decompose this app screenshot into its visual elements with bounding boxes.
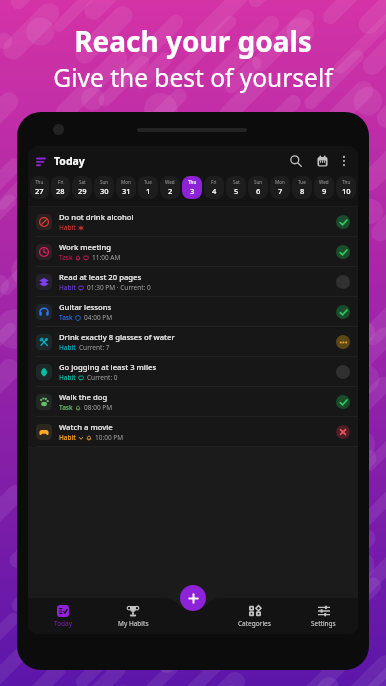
button[interactable]: Do not drink alcohol	[28, 207, 358, 237]
button[interactable]: Sun	[94, 176, 114, 199]
staticText: Wed	[319, 179, 329, 185]
button[interactable]: Toggle status	[336, 335, 350, 349]
staticText: Task	[59, 403, 73, 412]
staticText: Drink exactly 8 glasses of water	[59, 332, 175, 342]
staticText: Fri	[58, 179, 64, 185]
staticText: 28	[56, 186, 65, 196]
button[interactable]: Categories	[220, 598, 289, 634]
button[interactable]: More options	[334, 151, 354, 171]
button[interactable]: Today	[28, 598, 98, 634]
staticText: Settings	[311, 619, 336, 628]
staticText: 01:30 PM · Current: 0	[87, 283, 151, 292]
staticText: Reach your goals	[74, 22, 312, 60]
button[interactable]: Toggle status	[336, 245, 350, 259]
staticText: 31	[122, 186, 131, 196]
button[interactable]: Toggle status	[336, 275, 350, 289]
staticText: Work meeting	[59, 242, 112, 252]
button[interactable]: Toggle status	[336, 395, 350, 409]
staticText: Give the best of yourself	[53, 61, 333, 94]
staticText: Mon	[121, 179, 131, 185]
button[interactable]: Toggle status	[336, 215, 350, 229]
button[interactable]: My Habits	[98, 598, 168, 634]
button[interactable]: Tue	[138, 176, 158, 199]
staticText: Do not drink alcohol	[59, 212, 134, 222]
staticText: Sat	[233, 179, 240, 185]
button[interactable]: Fri	[51, 176, 70, 199]
button[interactable]: Toggle status	[336, 425, 350, 439]
button[interactable]: Watch a movie	[28, 417, 358, 447]
button[interactable]: Toggle status	[336, 305, 350, 319]
staticText: Sun	[254, 179, 263, 185]
staticText: 30	[100, 186, 109, 196]
button[interactable]: Go jogging at least 3 miles	[28, 357, 358, 387]
staticText: 8	[300, 186, 305, 196]
staticText: Wed	[165, 179, 175, 185]
staticText: Today	[54, 619, 73, 628]
staticText: Go jogging at least 3 miles	[59, 362, 157, 372]
staticText: 08:00 PM	[84, 403, 113, 412]
staticText: 1	[146, 186, 151, 196]
staticText: Thu	[188, 179, 197, 185]
button[interactable]: Sat	[72, 176, 92, 199]
staticText: Habit	[59, 223, 76, 232]
staticText: Habit	[59, 433, 76, 442]
staticText: 5	[234, 186, 239, 196]
staticText: 10:00 PM	[95, 433, 124, 442]
staticText: Thu	[342, 179, 351, 185]
staticText: 9	[322, 186, 327, 196]
button[interactable]: Thu	[30, 176, 49, 199]
staticText: Fri	[211, 179, 217, 185]
staticText: 6	[256, 186, 261, 196]
button[interactable]: Fri	[204, 176, 224, 199]
button[interactable]: Mon	[270, 176, 290, 199]
staticText: Guitar lessons	[59, 302, 112, 312]
staticText: Categories	[238, 619, 271, 628]
button[interactable]: Calendar	[311, 150, 333, 172]
staticText: Tue	[144, 179, 152, 185]
button[interactable]: Thu	[336, 176, 356, 199]
button[interactable]: Drink exactly 8 glasses of water	[28, 327, 358, 357]
staticText: 27	[35, 186, 44, 196]
staticText: Thu	[35, 179, 44, 185]
staticText: Read at least 20 pages	[59, 272, 142, 282]
button[interactable]: Sun	[248, 176, 268, 199]
staticText: Current: 7	[79, 343, 110, 352]
staticText: Task	[59, 313, 73, 322]
staticText: Habit	[59, 373, 76, 382]
button[interactable]: Settings	[289, 598, 358, 634]
staticText: Mon	[275, 179, 285, 185]
staticText: Sat	[79, 179, 86, 185]
staticText: Watch a movie	[59, 422, 113, 432]
staticText: 10	[342, 186, 351, 196]
staticText: 7	[278, 186, 283, 196]
staticText: 04:00 PM	[84, 313, 113, 322]
button[interactable]: Mon	[116, 176, 136, 199]
button[interactable]: Add	[180, 585, 206, 611]
button[interactable]: Work meeting	[28, 237, 358, 267]
button[interactable]: Sat	[226, 176, 246, 199]
button[interactable]: Search	[285, 150, 307, 172]
staticText: My Habits	[118, 619, 149, 628]
staticText: Today	[54, 154, 85, 168]
staticText: 29	[78, 186, 87, 196]
button[interactable]: Menu	[32, 153, 49, 170]
button[interactable]: Wed	[314, 176, 334, 199]
button[interactable]: Tue	[292, 176, 312, 199]
button[interactable]: Thu	[182, 176, 202, 199]
staticText: Habit	[59, 283, 76, 292]
staticText: 3	[190, 186, 195, 196]
staticText: Current: 0	[87, 373, 118, 382]
staticText: Tue	[298, 179, 306, 185]
button[interactable]: Guitar lessons	[28, 297, 358, 327]
staticText: 2	[168, 186, 173, 196]
button[interactable]: Walk the dog	[28, 387, 358, 417]
button[interactable]: Read at least 20 pages	[28, 267, 358, 297]
staticText: Task	[59, 253, 73, 262]
button[interactable]: Toggle status	[336, 365, 350, 379]
staticText: 11:00 AM	[92, 253, 121, 262]
staticText: Walk the dog	[59, 392, 108, 402]
staticText: Sun	[100, 179, 109, 185]
staticText: Habit	[59, 343, 76, 352]
staticText: 4	[212, 186, 217, 196]
button[interactable]: Wed	[160, 176, 180, 199]
